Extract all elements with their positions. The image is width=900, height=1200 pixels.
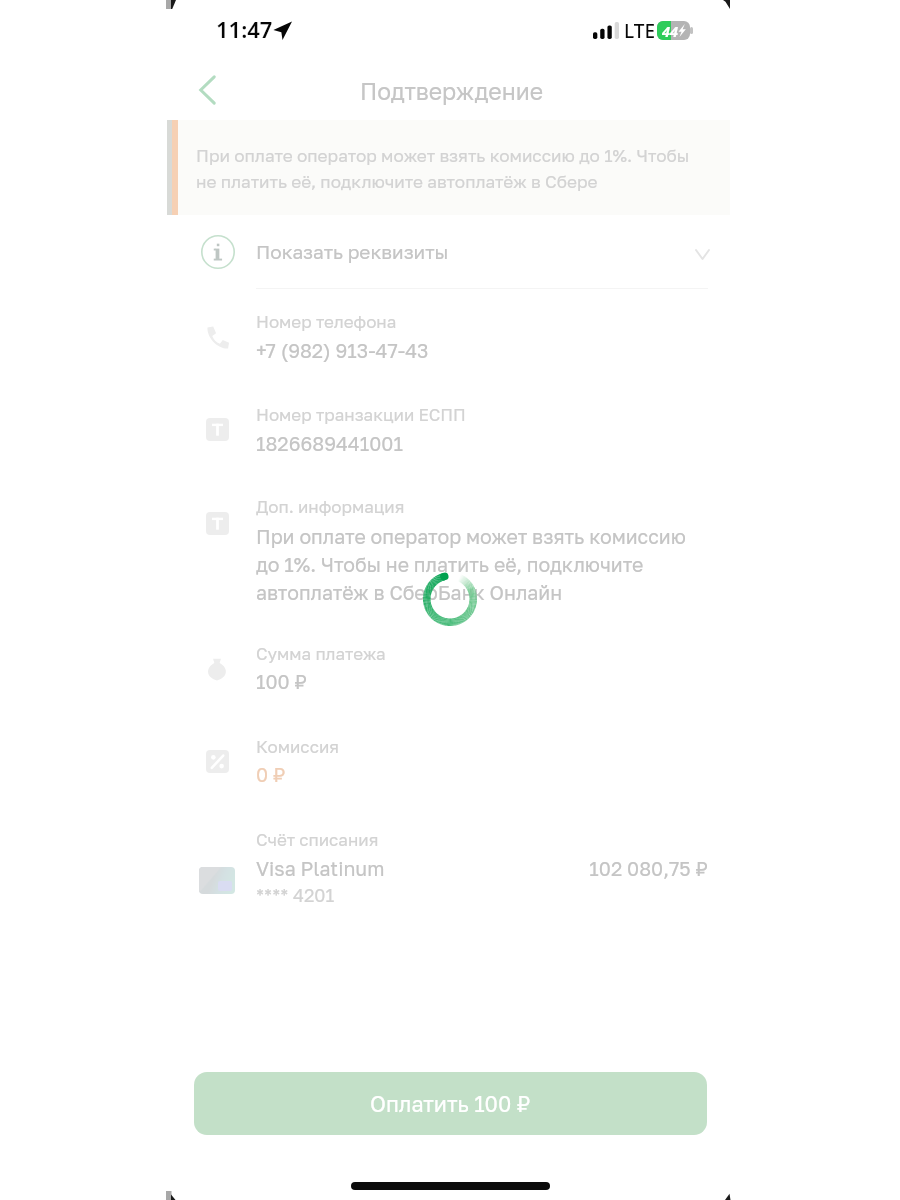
staticText: Оплатить 100 ₽ (370, 1091, 531, 1117)
staticText: Доп. информация (256, 496, 405, 516)
button[interactable] (168, 400, 730, 466)
staticText: 11:47 (216, 14, 273, 44)
button[interactable] (168, 307, 730, 373)
staticText: 44 (662, 21, 678, 40)
staticText: Сумма платежа (256, 643, 386, 663)
staticText: +7 (982) 913-47-43 (256, 339, 708, 362)
staticText: 1826689441001 (256, 432, 708, 455)
button[interactable] (168, 732, 730, 798)
staticText: Номер транзакции ЕСПП (256, 404, 466, 424)
button[interactable]: Назад (182, 63, 236, 117)
staticText: 0 ₽ (256, 763, 708, 786)
staticText: 102 080,75 ₽ (468, 857, 708, 880)
staticText: Visa Platinum (256, 857, 385, 880)
button[interactable] (168, 639, 730, 705)
staticText: LTE (624, 18, 656, 44)
staticText: **** 4201 (256, 884, 335, 906)
staticText: Подтверждение (360, 77, 544, 105)
button[interactable]: Показать реквизиты (168, 222, 730, 289)
staticText: При оплате оператор может взять комиссию… (196, 145, 696, 192)
staticText: Комиссия (256, 736, 339, 756)
button[interactable] (168, 830, 730, 918)
staticText: Номер телефона (256, 311, 397, 331)
staticText: 100 ₽ (256, 670, 708, 693)
button[interactable]: Оплатить 100 ₽ (194, 1072, 707, 1135)
staticText: При оплате оператор может взять комиссию… (256, 525, 708, 604)
staticText: Показать реквизиты (256, 240, 449, 263)
staticText: Счёт списания (256, 829, 379, 849)
button[interactable] (168, 493, 730, 643)
